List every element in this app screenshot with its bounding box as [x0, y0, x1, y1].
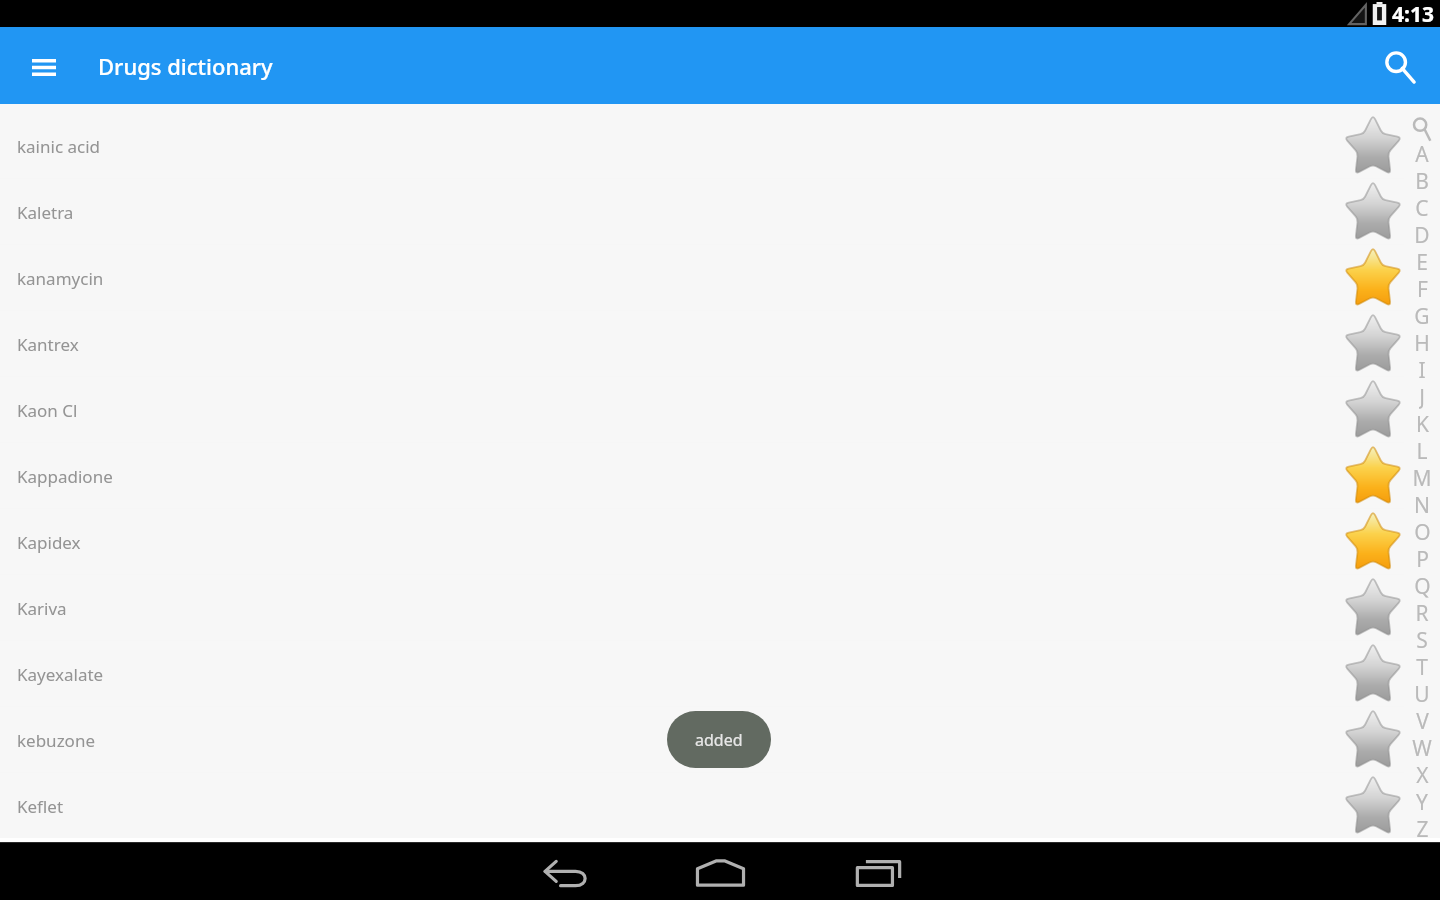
button[interactable]: Kaletra: [0, 179, 1404, 245]
staticText: Kappadione: [17, 465, 113, 488]
button[interactable]: C: [1404, 194, 1440, 221]
button[interactable]: Toggle favourite for Kantrex: [1342, 313, 1404, 375]
staticText: I: [1418, 356, 1426, 383]
staticText: kanamycin: [17, 267, 104, 290]
button[interactable]: B: [1404, 167, 1440, 194]
button[interactable]: Kappadione: [0, 443, 1404, 509]
button[interactable]: Kayexalate: [0, 641, 1404, 707]
staticText: G: [1414, 302, 1430, 329]
staticText: M: [1412, 464, 1432, 491]
staticText: V: [1416, 707, 1429, 734]
staticText: Kayexalate: [17, 663, 104, 686]
button[interactable]: P: [1404, 545, 1440, 572]
staticText: D: [1414, 221, 1430, 248]
button[interactable]: Toggle favourite for Kapidex: [1342, 511, 1404, 573]
staticText: T: [1416, 653, 1428, 680]
button[interactable]: U: [1404, 680, 1440, 707]
button[interactable]: Toggle favourite for Keflet: [1342, 775, 1404, 837]
staticText: Z: [1416, 815, 1429, 842]
staticText: P: [1416, 545, 1429, 572]
staticText: E: [1416, 248, 1428, 275]
button[interactable]: Keflet: [0, 773, 1404, 839]
staticText: C: [1415, 194, 1429, 221]
staticText: L: [1416, 437, 1428, 464]
button[interactable]: X: [1404, 761, 1440, 788]
button[interactable]: L: [1404, 437, 1440, 464]
button[interactable]: kanamycin: [0, 245, 1404, 311]
button[interactable]: F: [1404, 275, 1440, 302]
button[interactable]: H: [1404, 329, 1440, 356]
staticText: B: [1415, 167, 1429, 194]
staticText: Kantrex: [17, 333, 79, 356]
button[interactable]: N: [1404, 491, 1440, 518]
button[interactable]: Search the dictionary: [1404, 113, 1440, 140]
button[interactable]: M: [1404, 464, 1440, 491]
staticText: W: [1412, 734, 1432, 761]
button[interactable]: Toggle favourite for kainic acid: [1342, 115, 1404, 177]
button[interactable]: Z: [1404, 815, 1440, 842]
button[interactable]: Q: [1404, 572, 1440, 599]
staticText: X: [1416, 761, 1429, 788]
button[interactable]: kebuzone: [0, 707, 1404, 773]
staticText: kainic acid: [17, 135, 101, 158]
button[interactable]: Toggle favourite for Kappadione: [1342, 445, 1404, 507]
button[interactable]: A: [1404, 140, 1440, 167]
staticText: O: [1414, 518, 1431, 545]
button[interactable]: R: [1404, 599, 1440, 626]
button[interactable]: Toggle favourite for Kaon Cl: [1342, 379, 1404, 441]
button[interactable]: K: [1404, 410, 1440, 437]
button[interactable]: Y: [1404, 788, 1440, 815]
button[interactable]: Kapidex: [0, 509, 1404, 575]
staticText: Drugs dictionary: [98, 51, 273, 81]
staticText: N: [1414, 491, 1430, 518]
button[interactable]: Open navigation menu: [20, 42, 68, 90]
button[interactable]: Toggle favourite for kanamycin: [1342, 247, 1404, 309]
button[interactable]: J: [1404, 383, 1440, 410]
button[interactable]: Toggle favourite for Kariva: [1342, 577, 1404, 639]
staticText: A: [1415, 140, 1429, 167]
button[interactable]: O: [1404, 518, 1440, 545]
staticText: F: [1417, 275, 1428, 302]
staticText: Kapidex: [17, 531, 81, 554]
staticText: Keflet: [17, 795, 64, 818]
staticText: J: [1419, 383, 1425, 410]
staticText: added: [695, 729, 743, 751]
button[interactable]: Recent apps: [830, 847, 926, 897]
button[interactable]: kainic acid: [0, 113, 1404, 179]
button[interactable]: D: [1404, 221, 1440, 248]
button[interactable]: V: [1404, 707, 1440, 734]
button[interactable]: Kantrex: [0, 311, 1404, 377]
staticText: Q: [1414, 572, 1431, 599]
button[interactable]: Kariva: [0, 575, 1404, 641]
button[interactable]: T: [1404, 653, 1440, 680]
button[interactable]: W: [1404, 734, 1440, 761]
button[interactable]: Toggle favourite for Kaletra: [1342, 181, 1404, 243]
staticText: H: [1414, 329, 1430, 356]
button[interactable]: Home: [672, 848, 768, 898]
button[interactable]: Back: [517, 848, 613, 898]
staticText: kebuzone: [17, 729, 95, 752]
staticText: Y: [1416, 788, 1428, 815]
staticText: Kariva: [17, 597, 67, 620]
staticText: Kaon Cl: [17, 399, 78, 422]
button[interactable]: I: [1404, 356, 1440, 383]
button[interactable]: Kaon Cl: [0, 377, 1404, 443]
button[interactable]: E: [1404, 248, 1440, 275]
button[interactable]: Toggle favourite for kebuzone: [1342, 709, 1404, 771]
button[interactable]: G: [1404, 302, 1440, 329]
staticText: Kaletra: [17, 201, 74, 224]
button[interactable]: Search: [1374, 40, 1426, 92]
staticText: K: [1416, 410, 1429, 437]
staticText: R: [1415, 599, 1429, 626]
staticText: 4:13: [1392, 0, 1434, 27]
button[interactable]: S: [1404, 626, 1440, 653]
staticText: U: [1414, 680, 1430, 707]
button[interactable]: Toggle favourite for Kayexalate: [1342, 643, 1404, 705]
staticText: S: [1416, 626, 1428, 653]
